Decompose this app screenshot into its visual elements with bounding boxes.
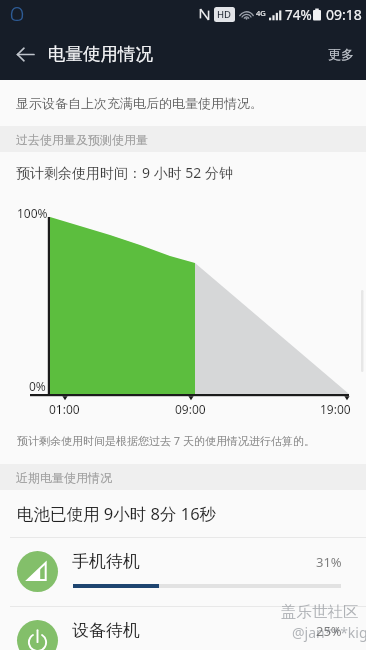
staticText: 电池已使用 9小时 8分 16秒 (17, 502, 217, 525)
staticText: 19:00 (320, 401, 351, 417)
staticText: 显示设备自上次充满电后的电量使用情况。 (16, 95, 263, 111)
staticText: 预计剩余使用时间：9 小时 52 分钟 (16, 163, 233, 182)
staticText: 盖乐世社区 (281, 602, 359, 622)
button[interactable]: 手机待机 (0, 538, 366, 606)
staticText: 手机待机 (72, 551, 140, 572)
staticText: 09:18 (326, 5, 362, 24)
staticText: 近期电量使用情况 (16, 470, 112, 485)
staticText: 09:00 (175, 401, 206, 417)
staticText: 100% (17, 205, 48, 221)
staticText: 预计剩余使用时间是根据您过去 7 天的使用情况进行估算的。 (17, 433, 316, 448)
staticText: 0% (29, 378, 46, 394)
staticText: 25% (316, 622, 342, 640)
staticText: 设备待机 (72, 620, 140, 641)
staticText: HD (217, 8, 232, 21)
staticText: 31% (316, 553, 342, 571)
staticText: 过去使用量及预测使用量 (16, 132, 148, 147)
staticText: 01:00 (49, 401, 80, 417)
staticText: 更多 (328, 46, 354, 62)
button[interactable]: Back (4, 33, 46, 75)
staticText: 74% (285, 6, 312, 24)
staticText: 4G (256, 8, 266, 18)
staticText: 电量使用情况 (48, 43, 153, 65)
button[interactable]: 设备待机 (0, 607, 366, 650)
staticText: @jan***kig (292, 623, 366, 642)
button[interactable]: 更多 (316, 34, 366, 74)
